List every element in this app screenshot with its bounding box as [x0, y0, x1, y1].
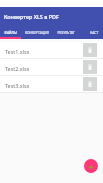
- staticText: Test1.xlsx: [5, 48, 30, 55]
- button[interactable]: Test1.xlsx: [0, 42, 103, 58]
- staticText: Конвертер XLS в PDF: [4, 13, 59, 20]
- button[interactable]: Test3.xlsx: [0, 76, 103, 92]
- staticText: КОНВЕРТАЦИЯ: [25, 30, 49, 34]
- staticText: РЕЗУЛЬТАТ: [57, 30, 75, 34]
- button[interactable]: КОНВЕРТАЦИЯ: [25, 28, 49, 39]
- button[interactable]: Test2.xlsx: [0, 59, 103, 75]
- button[interactable]: Delete: [83, 43, 97, 57]
- button[interactable]: Delete: [83, 60, 97, 74]
- button[interactable]: РЕЗУЛЬТАТ: [57, 28, 75, 39]
- button[interactable]: Delete: [83, 77, 97, 91]
- staticText: Test2.xlsx: [5, 65, 30, 72]
- staticText: НАСТРОЙКИ: [89, 30, 99, 34]
- button[interactable]: НАСТРОЙКИ: [89, 28, 99, 39]
- button[interactable]: Add file: [84, 159, 98, 173]
- button[interactable]: ФАЙЛЫ: [4, 28, 17, 39]
- staticText: Test3.xlsx: [5, 82, 30, 89]
- staticText: ФАЙЛЫ: [4, 30, 17, 34]
